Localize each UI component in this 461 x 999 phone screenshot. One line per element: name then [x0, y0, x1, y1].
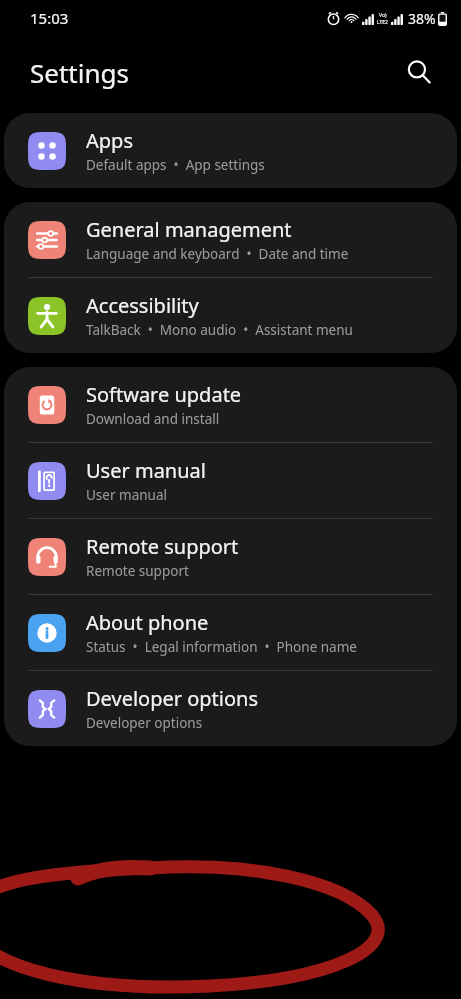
staticText: About phone: [86, 609, 209, 636]
button[interactable]: Accessibility: [4, 278, 457, 353]
staticText: General management: [86, 216, 292, 243]
button[interactable]: General management: [4, 202, 457, 277]
staticText: Default apps • App settings: [86, 156, 265, 174]
staticText: Developer options: [86, 714, 203, 732]
staticText: User manual: [86, 457, 206, 484]
staticText: Apps: [86, 127, 133, 154]
button[interactable]: Software update: [4, 367, 457, 442]
staticText: Download and install: [86, 410, 220, 428]
staticText: Developer options: [86, 685, 259, 712]
staticText: Software update: [86, 381, 242, 408]
staticText: 15:03: [30, 8, 69, 28]
button[interactable]: Search: [399, 52, 439, 92]
button[interactable]: Apps: [4, 113, 457, 188]
staticText: Vo): [379, 12, 387, 19]
staticText: TalkBack • Mono audio • Assistant menu: [86, 321, 353, 339]
staticText: Remote support: [86, 562, 189, 580]
button[interactable]: Developer options: [4, 671, 457, 746]
staticText: 38%: [408, 9, 436, 28]
staticText: LTE2: [377, 19, 388, 26]
button[interactable]: User manual: [4, 443, 457, 518]
staticText: Settings: [30, 55, 129, 90]
staticText: Remote support: [86, 533, 239, 560]
staticText: Language and keyboard • Date and time: [86, 245, 349, 263]
staticText: Status • Legal information • Phone name: [86, 638, 357, 656]
staticText: User manual: [86, 486, 167, 504]
staticText: Accessibility: [86, 292, 199, 319]
button[interactable]: About phone: [4, 595, 457, 670]
button[interactable]: Remote support: [4, 519, 457, 594]
